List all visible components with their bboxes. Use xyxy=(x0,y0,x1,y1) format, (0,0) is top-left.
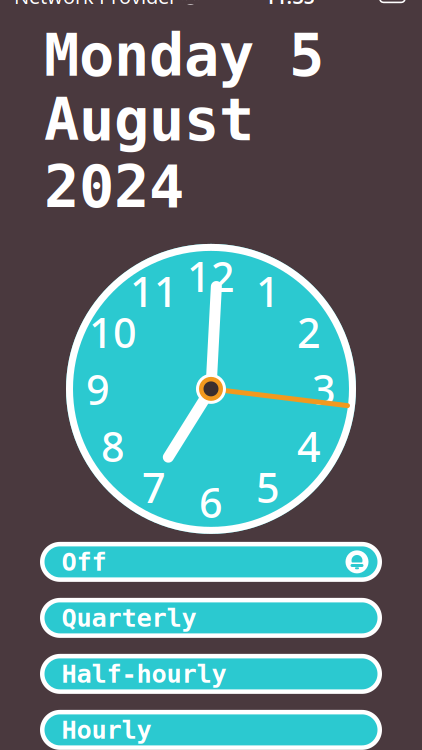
staticText: 11 xyxy=(130,263,178,318)
staticText: Off xyxy=(61,547,106,576)
staticText: Hourly xyxy=(61,715,151,744)
button[interactable]: Hourly xyxy=(40,710,382,750)
button[interactable]: Off xyxy=(40,542,382,582)
staticText: 12 xyxy=(187,248,235,303)
staticText: Monday 5 xyxy=(44,22,324,89)
staticText: 4 xyxy=(297,418,321,473)
staticText: 1 xyxy=(256,263,280,318)
staticText: Quarterly xyxy=(61,603,196,632)
staticText: 7 xyxy=(142,459,166,514)
button[interactable]: Half-hourly xyxy=(40,654,382,694)
staticText: 10 xyxy=(89,304,137,359)
staticText: 2 xyxy=(297,304,321,359)
staticText: 8 xyxy=(101,418,125,473)
staticText: 6 xyxy=(199,474,223,529)
staticText: Half-hourly xyxy=(61,659,226,688)
staticText: 5 xyxy=(256,459,280,514)
staticText: August 2024 xyxy=(44,87,254,220)
staticText: Network Provider xyxy=(14,0,177,9)
staticText: 11:35 xyxy=(264,0,314,9)
staticText: 3 xyxy=(312,361,336,416)
button[interactable]: Quarterly xyxy=(40,598,382,638)
staticText: 9 xyxy=(86,361,110,416)
